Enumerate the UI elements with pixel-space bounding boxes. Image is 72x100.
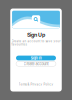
staticText: Sign In [30,56,41,60]
staticText: Sign Up [27,32,45,38]
staticText: Terms & Privacy Policy [18,83,53,86]
staticText: Create account [23,62,48,66]
button[interactable]: Sign In [16,56,56,60]
button[interactable]: Terms & Privacy Policy [18,83,53,86]
staticText: Create an account to save your favourite… [11,39,60,46]
button[interactable]: Create account [16,61,56,66]
